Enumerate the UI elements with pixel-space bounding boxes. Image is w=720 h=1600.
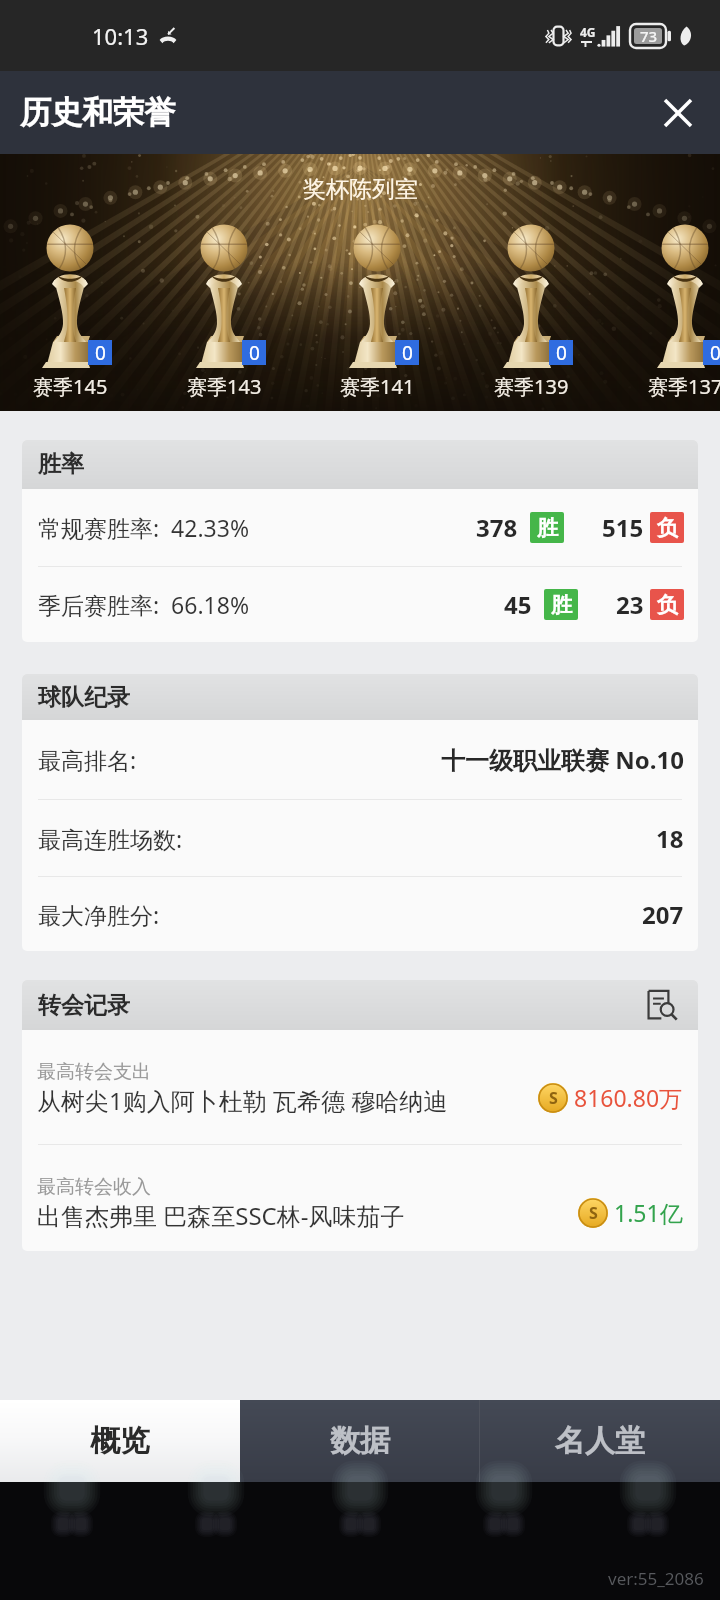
staticText: 最大净胜分: <box>38 899 160 930</box>
staticText: 18 <box>656 822 684 855</box>
staticText: 负 <box>657 592 678 618</box>
staticText: 季后赛胜率: 66.18% <box>38 589 250 620</box>
staticText: 0 <box>402 340 413 365</box>
button[interactable]: Home <box>0 1482 144 1600</box>
button[interactable]: 名人堂 <box>480 1400 720 1482</box>
staticText: 奖杯陈列室 <box>303 175 418 204</box>
button[interactable]: 最大净胜分: <box>22 877 698 951</box>
button[interactable]: 数据 <box>240 1400 479 1482</box>
button[interactable]: Close <box>650 85 706 141</box>
staticText: 0 <box>95 340 106 365</box>
staticText: 胜 <box>551 592 572 618</box>
staticText: 赛季137 <box>648 373 720 400</box>
staticText: 从树尖1购入阿卜杜勒 瓦希德 穆哈纳迪 <box>37 1084 448 1117</box>
button[interactable]: Search transfer records <box>640 983 684 1027</box>
staticText: 常规赛胜率: 42.33% <box>38 512 250 543</box>
staticText: 10:13 <box>92 21 149 51</box>
staticText: 赛季141 <box>340 373 415 400</box>
staticText: 负 <box>657 515 678 541</box>
staticText: 最高转会收入 <box>37 1175 151 1199</box>
staticText: 最高排名: <box>38 744 137 775</box>
staticText: 378 <box>476 511 518 544</box>
button[interactable]: 常规赛胜率: 42.33% <box>22 489 698 566</box>
staticText: 8160.80万 <box>574 1082 683 1113</box>
staticText: 515 <box>602 511 644 544</box>
button[interactable]: 最高转会支出 <box>22 1030 698 1144</box>
staticText: 0 <box>556 340 567 365</box>
button[interactable]: Squad <box>144 1482 288 1600</box>
staticText: 胜 <box>537 515 558 541</box>
staticText: 0 <box>710 340 720 365</box>
staticText: 名人堂 <box>555 1422 645 1460</box>
staticText: 出售杰弗里 巴森至SSC林-风味茄子 <box>37 1199 405 1232</box>
staticText: 胜率 <box>38 450 84 479</box>
staticText: 45 <box>504 588 532 621</box>
button[interactable]: 最高连胜场数: <box>22 800 698 876</box>
staticText: 转会记录 <box>38 991 130 1020</box>
staticText: 数据 <box>330 1422 390 1460</box>
staticText: 最高连胜场数: <box>38 823 183 854</box>
staticText: 十一级职业联赛 No.10 <box>441 743 684 776</box>
staticText: 207 <box>642 898 684 931</box>
staticText: 赛季139 <box>494 373 569 400</box>
staticText: 历史和荣誉 <box>20 93 175 132</box>
button[interactable]: 概览 <box>0 1400 240 1482</box>
button[interactable]: Profile <box>576 1482 720 1600</box>
button[interactable]: Matches <box>288 1482 432 1600</box>
staticText: 赛季145 <box>33 373 108 400</box>
staticText: S <box>549 1087 558 1109</box>
button[interactable]: 最高排名: <box>22 720 698 799</box>
staticText: 概览 <box>90 1422 150 1460</box>
staticText: 4G <box>580 24 596 40</box>
button[interactable]: 最高转会收入 <box>22 1145 698 1251</box>
button[interactable]: League <box>432 1482 576 1600</box>
staticText: 最高转会支出 <box>37 1060 151 1084</box>
staticText: 23 <box>616 588 644 621</box>
staticText: 0 <box>249 340 260 365</box>
staticText: 73 <box>640 26 658 46</box>
staticText: 赛季143 <box>187 373 262 400</box>
staticText: ver:55_2086 <box>608 1567 704 1590</box>
staticText: 1.51亿 <box>614 1197 683 1228</box>
staticText: S <box>589 1202 598 1224</box>
button[interactable]: 季后赛胜率: 66.18% <box>22 567 698 642</box>
staticText: 球队纪录 <box>38 683 130 712</box>
